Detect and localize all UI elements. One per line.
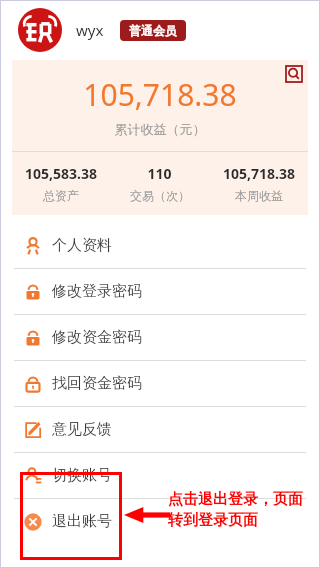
button[interactable]: 个人资料 xyxy=(0,223,320,268)
staticText: 找回资金密码 xyxy=(52,374,142,393)
staticText: 点击退出登录，页面 xyxy=(168,490,303,509)
staticText: 交易（次） xyxy=(130,188,190,203)
staticText: 105,718.38 xyxy=(12,74,308,115)
button[interactable]: 退出账号 xyxy=(0,499,320,544)
button[interactable]: 切换账号 xyxy=(0,453,320,498)
staticText: 105,718.38 xyxy=(223,164,295,183)
button[interactable]: 普通会员 xyxy=(120,20,186,41)
button[interactable]: 110 xyxy=(110,164,209,203)
staticText: 意见反馈 xyxy=(52,420,112,439)
staticText: 110 xyxy=(147,164,172,183)
button[interactable]: 修改登录密码 xyxy=(0,269,320,314)
button[interactable]: 105,718.38 xyxy=(209,164,308,203)
button[interactable]: 意见反馈 xyxy=(0,407,320,452)
staticText: 转到登录页面 xyxy=(168,511,258,530)
staticText: 修改资金密码 xyxy=(52,328,142,347)
button[interactable]: 105,583.38 xyxy=(12,164,110,203)
staticText: 退出账号 xyxy=(52,512,112,531)
staticText: 修改登录密码 xyxy=(52,282,142,301)
button[interactable]: 修改资金密码 xyxy=(0,315,320,360)
staticText: 累计收益（元） xyxy=(12,121,308,137)
staticText: 切换账号 xyxy=(52,466,112,485)
staticText: 个人资料 xyxy=(52,236,112,255)
staticText: 本周收益 xyxy=(235,188,283,203)
staticText: 总资产 xyxy=(43,188,79,203)
staticText: wyx xyxy=(76,20,104,40)
button[interactable]: Search xyxy=(284,64,304,84)
staticText: 普通会员 xyxy=(129,23,177,38)
staticText: 105,583.38 xyxy=(25,164,97,183)
button[interactable]: 找回资金密码 xyxy=(0,361,320,406)
